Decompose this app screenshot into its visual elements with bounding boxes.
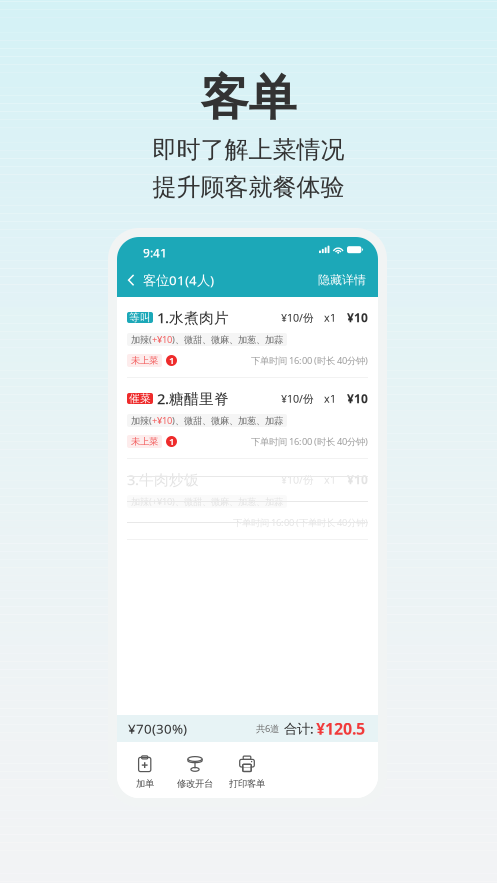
button[interactable]: 打印客单 xyxy=(229,755,265,789)
staticText: )、微甜、微麻、加葱、加蒜 xyxy=(172,495,283,508)
staticText: 1 xyxy=(169,435,174,448)
staticText: 打印客单 xyxy=(229,778,265,789)
staticText: ¥120.5 xyxy=(316,718,365,739)
staticText: 2.糖醋里脊 xyxy=(157,389,229,408)
staticText: ¥70(30%) xyxy=(128,720,187,737)
staticText: 等叫 xyxy=(129,311,151,324)
staticText: 共6道 xyxy=(256,722,279,735)
staticText: 客位01(4人) xyxy=(143,271,214,289)
button[interactable]: 隐藏详情 xyxy=(318,267,366,293)
button[interactable]: 修改开台 xyxy=(177,755,213,789)
staticText: x1 xyxy=(324,391,336,406)
staticText: +¥10 xyxy=(152,333,172,346)
staticText: ¥10/份 xyxy=(281,310,314,325)
staticText: 未上菜 xyxy=(131,436,158,447)
staticText: 加单 xyxy=(136,778,154,789)
button[interactable]: 加单 xyxy=(127,755,163,789)
staticText: 催菜 xyxy=(129,392,151,405)
staticText: 9:41 xyxy=(143,245,167,261)
staticText: )、微甜、微麻、加葱、加蒜 xyxy=(172,414,283,427)
staticText: ¥10/份 xyxy=(281,472,314,487)
staticText: +¥10 xyxy=(152,414,172,427)
button[interactable]: 客位01(4人) xyxy=(127,265,214,295)
staticText: 即时了解上菜情况 xyxy=(152,135,344,164)
staticText: ¥10 xyxy=(347,309,368,325)
staticText: 合计: xyxy=(284,720,314,737)
staticText: 1.水煮肉片 xyxy=(157,308,229,327)
staticText: 提升顾客就餐体验 xyxy=(152,172,344,202)
staticText: 1 xyxy=(169,354,174,367)
staticText: 加辣( xyxy=(131,333,152,346)
staticText: 下单时间 16:00 (时长 40分钟) xyxy=(251,435,368,448)
staticText: ¥10 xyxy=(347,390,368,406)
staticText: 加辣( xyxy=(131,495,152,508)
staticText: 下单时间 16:00 (下单时长 40分钟) xyxy=(233,516,368,529)
staticText: 未上菜 xyxy=(131,355,158,366)
staticText: +¥10 xyxy=(152,495,172,508)
staticText: x1 xyxy=(324,472,336,487)
staticText: )、微甜、微麻、加葱、加蒜 xyxy=(172,333,283,346)
staticText: 客单 xyxy=(200,68,296,127)
staticText: ¥10/份 xyxy=(281,391,314,406)
staticText: ¥10 xyxy=(347,471,368,487)
staticText: 加辣( xyxy=(131,414,152,427)
staticText: 隐藏详情 xyxy=(318,273,366,287)
staticText: 3.牛肉炒饭 xyxy=(127,470,199,489)
staticText: 下单时间 16:00 (时长 40分钟) xyxy=(251,354,368,367)
staticText: 修改开台 xyxy=(177,778,213,789)
staticText: x1 xyxy=(324,310,336,325)
